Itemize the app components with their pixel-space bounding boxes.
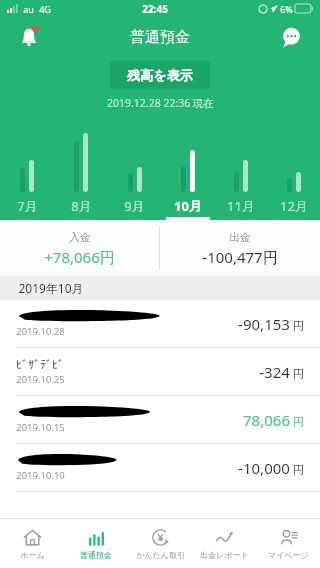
button[interactable]: かんたん取引: [128, 519, 192, 568]
button[interactable]: 7月: [0, 192, 54, 220]
staticText: +78,066円: [44, 247, 115, 267]
button[interactable]: ホーム: [0, 519, 64, 568]
button[interactable]: [161, 130, 214, 192]
button[interactable]: ﾋﾞｻﾞﾃﾞﾋﾞ: [0, 348, 320, 396]
staticText: 9月: [124, 197, 145, 215]
staticText: -10,000: [238, 458, 290, 478]
button[interactable]: [267, 130, 320, 192]
staticText: 12月: [280, 197, 308, 215]
button[interactable]: 2019.10.15: [0, 396, 320, 444]
staticText: 4G: [39, 3, 51, 15]
staticText: 2019.12.28 22:36 現在: [107, 96, 214, 110]
staticText: au: [23, 3, 34, 15]
button[interactable]: 2019.10.28: [0, 300, 320, 348]
button[interactable]: 10月: [161, 192, 214, 220]
button[interactable]: [54, 130, 108, 192]
staticText: 普通預金: [80, 550, 112, 560]
button[interactable]: 11月: [214, 192, 267, 220]
staticText: 6%: [280, 3, 293, 15]
button[interactable]: 8月: [54, 192, 108, 220]
staticText: 普通預金: [130, 28, 190, 47]
staticText: 78,066: [243, 410, 290, 430]
staticText: -100,477円: [202, 247, 278, 267]
staticText: -90,153: [238, 314, 290, 334]
staticText: 11月: [227, 197, 255, 215]
staticText: -324: [259, 362, 290, 382]
button[interactable]: マイページ: [256, 519, 320, 568]
button[interactable]: Notifications: [14, 22, 44, 52]
staticText: かんたん取引: [136, 550, 185, 560]
button[interactable]: [108, 130, 161, 192]
staticText: 円: [293, 463, 304, 477]
staticText: 2019.10.15: [16, 421, 65, 434]
staticText: ﾋﾞｻﾞﾃﾞﾋﾞ: [16, 358, 64, 370]
button[interactable]: 12月: [267, 192, 320, 220]
staticText: 出金: [229, 230, 251, 244]
button[interactable]: 出金レポート: [192, 519, 256, 568]
button[interactable]: Messages: [277, 23, 306, 52]
button[interactable]: 入金: [0, 220, 159, 276]
staticText: 円: [293, 367, 304, 381]
staticText: 円: [293, 415, 304, 429]
staticText: 8月: [71, 197, 92, 215]
button[interactable]: 9月: [108, 192, 161, 220]
staticText: 出金レポート: [200, 550, 249, 560]
staticText: 22:45: [142, 2, 168, 16]
button[interactable]: 出金: [160, 220, 320, 276]
staticText: マイページ: [268, 550, 309, 560]
staticText: ホーム: [20, 550, 45, 560]
staticText: 2019.10.28: [16, 325, 65, 338]
button[interactable]: [214, 130, 267, 192]
staticText: 2019.10.25: [16, 373, 65, 386]
staticText: 円: [293, 319, 304, 333]
button[interactable]: [0, 130, 54, 192]
staticText: 7月: [17, 197, 38, 215]
button[interactable]: 残高を表示: [110, 61, 210, 89]
staticText: 2019.10.10: [16, 469, 65, 482]
staticText: 入金: [69, 230, 91, 244]
button[interactable]: 普通預金: [64, 519, 128, 568]
staticText: 2019年10月: [18, 280, 84, 296]
staticText: 10月: [174, 197, 202, 215]
staticText: 残高を表示: [127, 67, 193, 83]
button[interactable]: 2019.10.10: [0, 444, 320, 492]
